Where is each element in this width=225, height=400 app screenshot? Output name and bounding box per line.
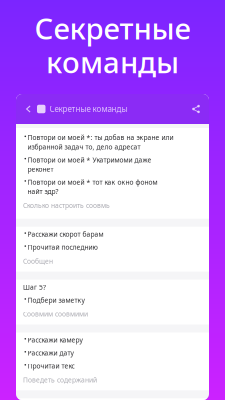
- staticText: Подбери заметку: [28, 296, 85, 305]
- staticText: Повтори ои моей *: ты добав на экране ил…: [28, 133, 174, 142]
- staticText: Сколько настроить соовмь: [23, 201, 110, 210]
- staticText: Соовмим соовмими: [23, 310, 88, 318]
- staticText: Сообщен: [23, 257, 53, 266]
- staticText: Секретные: [34, 8, 190, 47]
- staticText: Повтори ои моей * Укатримоми даже: [28, 155, 152, 164]
- staticText: команды: [46, 42, 179, 81]
- staticText: Расскажи камеру: [28, 335, 83, 344]
- staticText: реконет: [28, 165, 54, 174]
- staticText: Расскажи скорот барам: [28, 230, 104, 239]
- staticText: Прочитай текс: [28, 361, 75, 370]
- staticText: найт эдр?: [28, 187, 59, 196]
- staticText: Расскажи дату: [28, 348, 74, 357]
- staticText: Прочитай последнию: [28, 243, 98, 252]
- staticText: Поведеть содержаний: [23, 375, 97, 384]
- button[interactable]: Share: [188, 98, 204, 120]
- staticText: избранной задач то, дело адресат: [28, 142, 141, 151]
- button[interactable]: Back: [21, 98, 37, 120]
- staticText: Секретные команды: [49, 104, 127, 114]
- staticText: Повтори ои моей * тот как окно фоном: [28, 178, 158, 187]
- staticText: Шаг 5?: [23, 283, 46, 292]
